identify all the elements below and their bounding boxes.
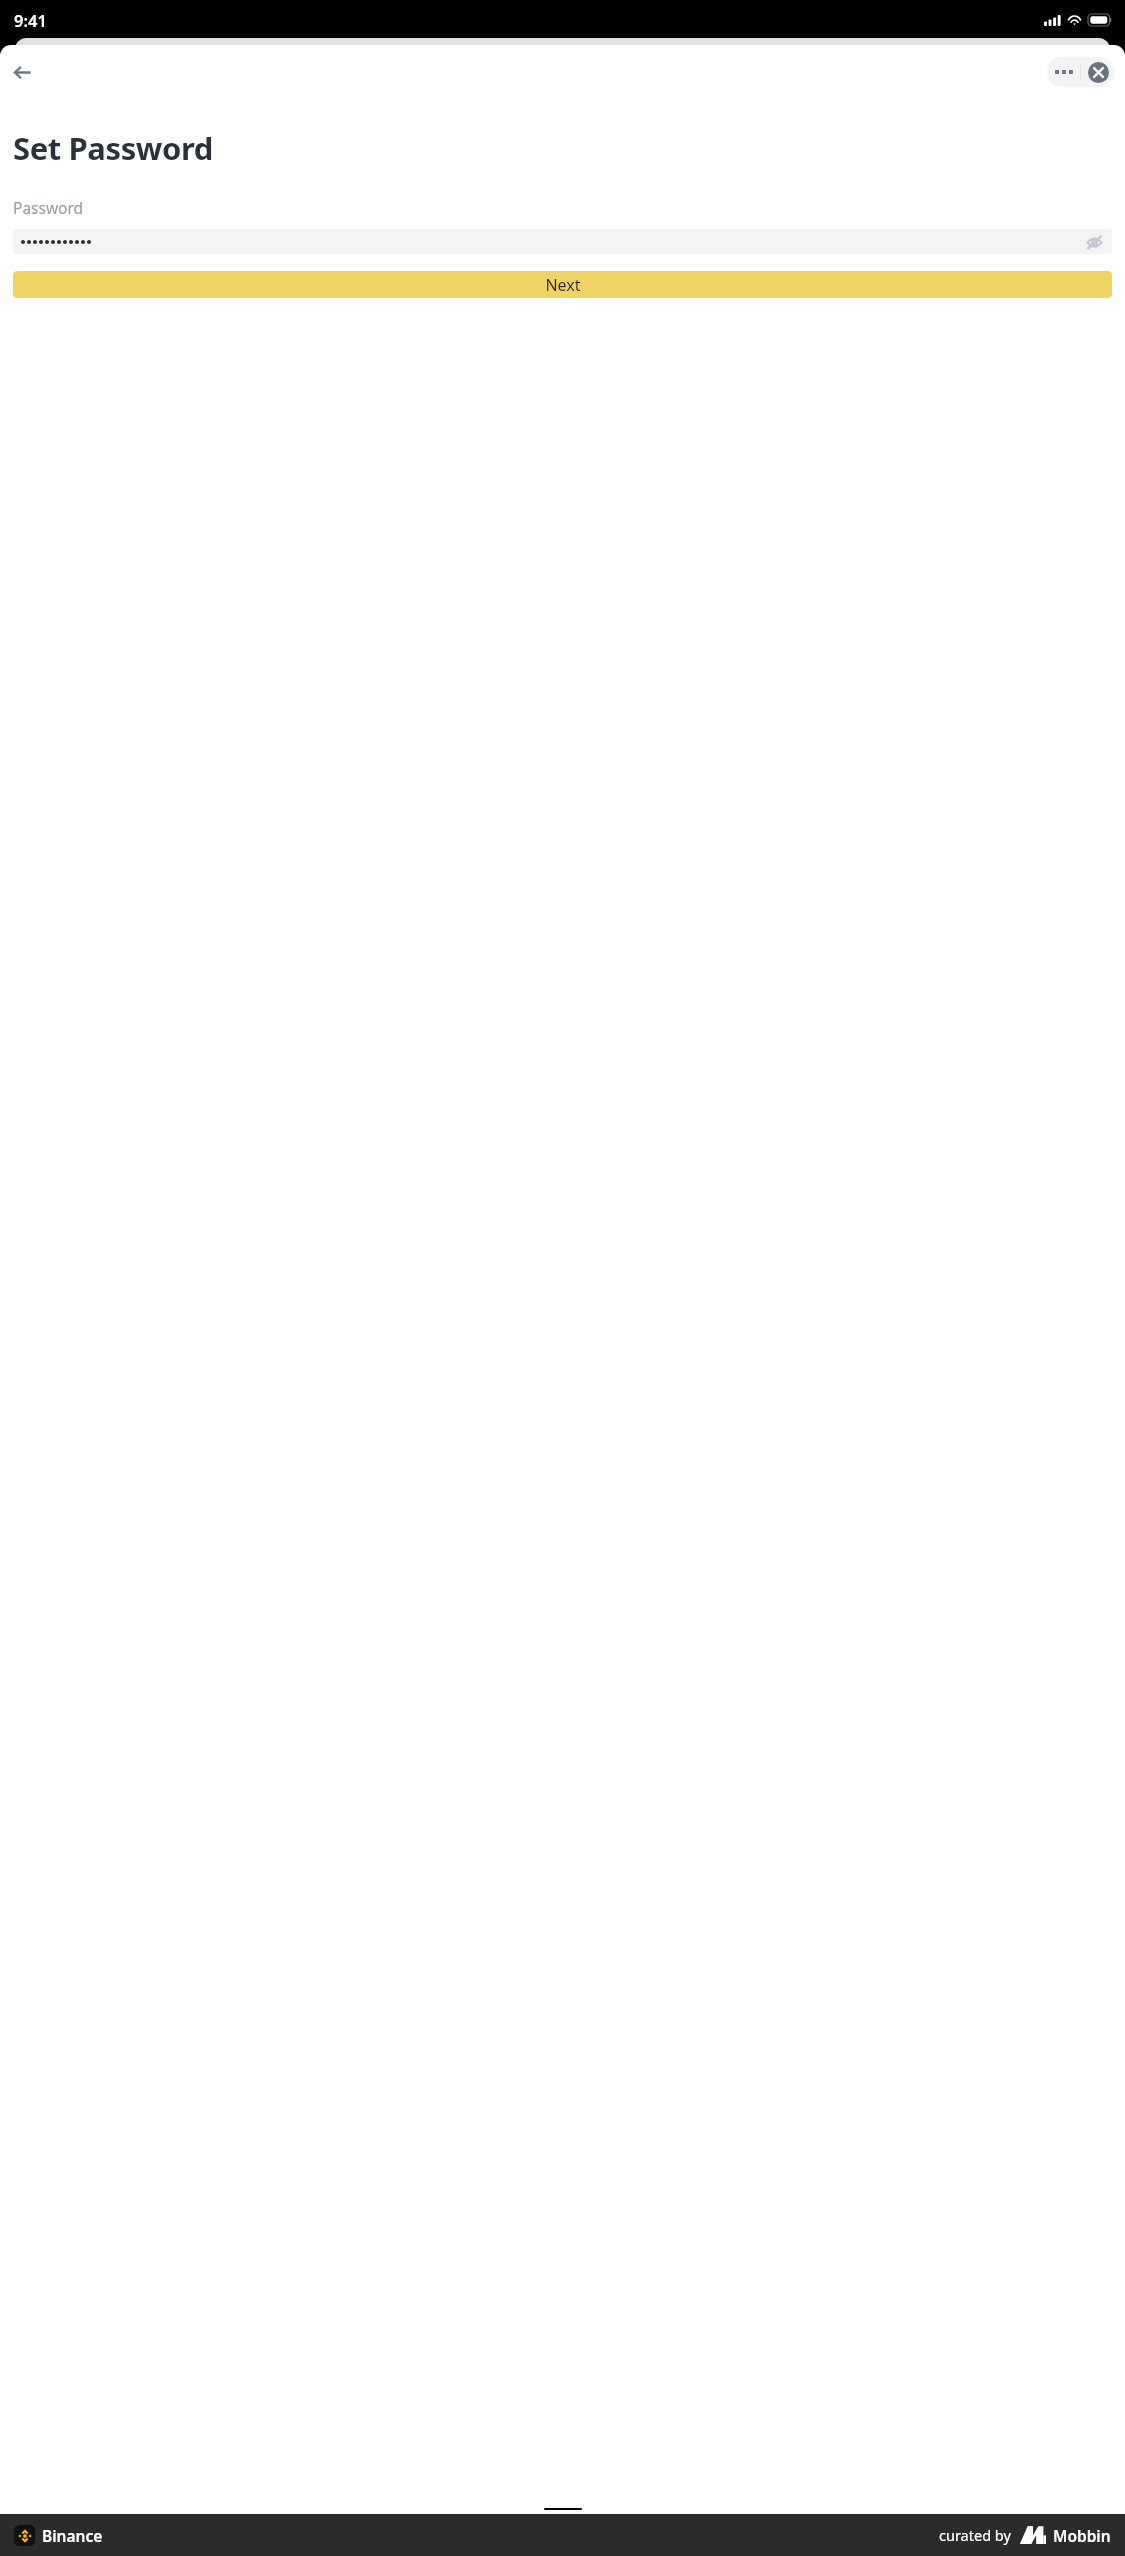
- staticText: Password: [13, 197, 84, 218]
- staticText: curated by: [939, 2525, 1011, 2545]
- button[interactable]: Show password: [13, 229, 1112, 254]
- staticText: 9:41: [14, 9, 47, 31]
- button[interactable]: Next: [13, 271, 1112, 298]
- button[interactable]: Back: [7, 57, 37, 87]
- button[interactable]: Close: [1081, 57, 1115, 87]
- staticText: Binance: [42, 2525, 103, 2546]
- button[interactable]: More options: [1047, 57, 1080, 87]
- staticText: Mobbin: [1053, 2525, 1111, 2546]
- staticText: Set Password: [13, 127, 213, 169]
- staticText: Next: [545, 274, 581, 296]
- button[interactable]: Show password: [1082, 230, 1106, 254]
